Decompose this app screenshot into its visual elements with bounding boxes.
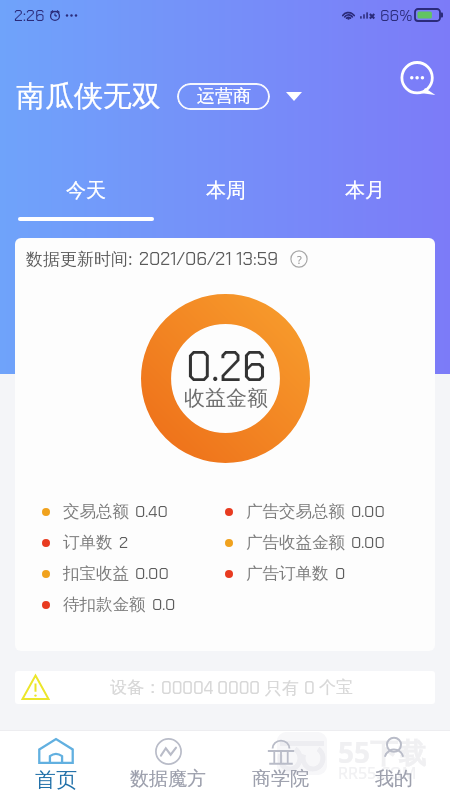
button[interactable]: 首页	[0, 730, 112, 800]
staticText: 只有	[265, 676, 304, 699]
staticText: 首页	[35, 767, 77, 793]
staticText: 扣宝收益	[63, 563, 129, 584]
staticText: 数据魔方	[130, 767, 206, 791]
staticText: 南瓜侠无双	[16, 78, 161, 115]
staticText: 0.00	[351, 501, 385, 522]
button[interactable]: 数据魔方	[112, 730, 224, 800]
staticText: 商学院	[252, 767, 309, 791]
staticText: 2	[119, 532, 129, 553]
staticText: 广告收益金额	[246, 532, 345, 553]
staticText: 0.0	[152, 594, 176, 615]
staticText: 0	[304, 677, 319, 699]
button[interactable]: 今天	[16, 160, 156, 222]
button[interactable]: 本周	[156, 160, 295, 222]
staticText: 设备：	[110, 677, 161, 698]
staticText: 今天	[66, 178, 106, 203]
staticText: RR55.COM	[338, 762, 417, 784]
button[interactable]: Expand operators	[279, 81, 309, 111]
staticText: 0.00	[351, 532, 385, 553]
staticText: 广告订单数	[246, 563, 329, 584]
button[interactable]: 商学院	[224, 730, 337, 800]
staticText: 2021/06/21 13:59	[139, 247, 278, 270]
staticText: 2:26	[14, 5, 45, 26]
staticText: 收益金额	[184, 385, 268, 411]
staticText: 运营商	[197, 85, 251, 108]
staticText: 广告交易总额	[246, 501, 345, 522]
staticText: 交易总额	[63, 501, 129, 522]
staticText: 本周	[206, 178, 246, 203]
staticText: 我的	[375, 767, 413, 791]
staticText: 66%	[380, 5, 413, 26]
button[interactable]: 设备：	[15, 671, 435, 704]
staticText: 个宝	[319, 677, 353, 698]
button[interactable]: 我的	[337, 730, 450, 800]
staticText: 0.40	[135, 501, 168, 522]
staticText: 55下载	[338, 733, 427, 771]
button[interactable]: Chat	[398, 59, 440, 101]
staticText: 00004 0000	[161, 677, 265, 699]
staticText: ?	[297, 252, 302, 267]
staticText: 0.00	[135, 563, 169, 584]
staticText: 0.26	[186, 340, 267, 393]
button[interactable]: 本月	[295, 160, 434, 222]
staticText: 订单数	[63, 532, 113, 553]
staticText: 本月	[345, 178, 385, 203]
staticText: 待扣款金额	[63, 594, 146, 615]
staticText: 数据更新时间:	[26, 247, 133, 270]
button[interactable]: 运营商	[177, 83, 270, 110]
button[interactable]: Help	[290, 250, 308, 268]
staticText: 0	[335, 563, 346, 584]
